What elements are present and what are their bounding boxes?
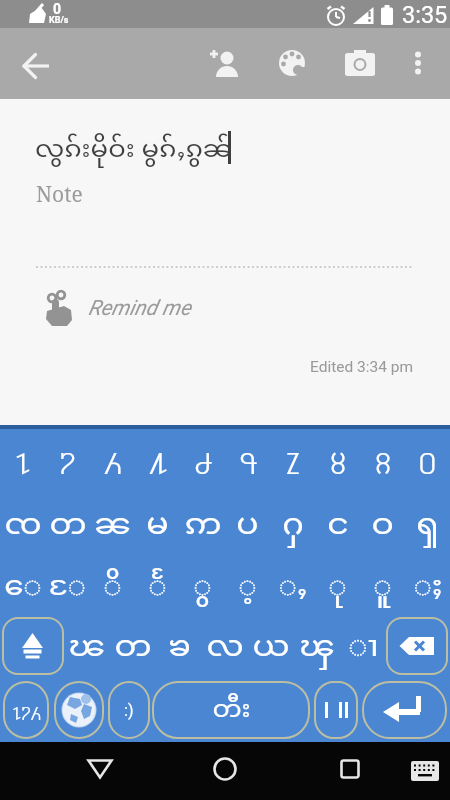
button[interactable]: ႄ — [45, 553, 90, 615]
staticText: ၸ — [4, 504, 42, 549]
button[interactable] — [338, 41, 382, 85]
staticText: ိ — [103, 567, 122, 609]
button[interactable]: တ — [45, 491, 90, 553]
button[interactable]: င — [315, 491, 360, 553]
button[interactable] — [398, 41, 438, 85]
staticText: ႐ — [418, 442, 437, 475]
staticText: ွ — [193, 567, 212, 609]
button[interactable] — [78, 745, 122, 793]
staticText: ့ — [238, 567, 257, 609]
button[interactable]: ႐ — [405, 429, 450, 491]
button[interactable]: ႑႒႓ — [3, 681, 49, 739]
button[interactable]: လ — [202, 615, 248, 677]
button[interactable]: ၶ — [156, 615, 202, 677]
button[interactable]: ၾ — [294, 615, 340, 677]
staticText: တီး — [212, 693, 251, 728]
staticText: ႒ — [59, 442, 76, 475]
staticText: ႁ — [282, 504, 304, 549]
staticText: ၢ — [348, 626, 379, 671]
button[interactable]: ႇ — [270, 553, 315, 615]
button[interactable]: ူ — [360, 553, 405, 615]
staticText: KB/s — [49, 15, 69, 26]
button[interactable]: ႙ — [360, 429, 405, 491]
staticText: ႄ — [49, 567, 86, 609]
button[interactable]: ယ — [248, 615, 294, 677]
button[interactable]: ွ — [180, 553, 225, 615]
button[interactable]: ႅ — [135, 553, 180, 615]
staticText: ၽ — [68, 626, 106, 671]
staticText: ႘ — [330, 442, 346, 475]
staticText: ႑႒႓ — [12, 701, 41, 720]
staticText: 0 — [53, 1, 62, 17]
button[interactable]: ဝ — [360, 491, 405, 553]
button[interactable]: တ — [110, 615, 156, 677]
button[interactable]: ဢ — [180, 491, 225, 553]
button[interactable] — [386, 617, 448, 675]
button[interactable]: တီး — [152, 681, 310, 739]
staticText: 3:35 — [402, 1, 448, 29]
button[interactable] — [314, 681, 358, 739]
button[interactable] — [406, 752, 444, 790]
button[interactable]: ု — [315, 553, 360, 615]
button[interactable]: ပ — [225, 491, 270, 553]
staticText: ူ — [373, 567, 392, 609]
staticText: ဝ — [371, 504, 394, 549]
staticText: လ — [206, 626, 244, 671]
button[interactable]: ႓ — [90, 429, 135, 491]
button[interactable] — [203, 41, 247, 85]
staticText: ၾ — [299, 626, 336, 671]
button[interactable]: ႕ — [180, 429, 225, 491]
staticText: ု — [328, 567, 347, 609]
staticText: ေ — [4, 567, 42, 609]
staticText: ၼ — [94, 504, 132, 549]
button[interactable]: မ — [135, 491, 180, 553]
staticText: ႗ — [286, 442, 300, 475]
staticText: မ — [146, 504, 169, 549]
staticText: ႅ — [148, 567, 167, 609]
staticText: တ — [114, 626, 152, 671]
button[interactable]: ၸ — [0, 491, 45, 553]
button[interactable] — [362, 681, 447, 739]
button[interactable]: ၼ — [90, 491, 135, 553]
button[interactable]: ႑ — [0, 429, 45, 491]
button[interactable]: ႈ — [405, 553, 450, 615]
staticText: Remind me — [88, 296, 191, 321]
staticText: Edited 3:34 pm — [310, 358, 414, 376]
staticText: လွၵ်းမိုဝ်း မွၵ်ႇၵွၼ် — [35, 133, 233, 168]
button[interactable]: ိ — [90, 553, 135, 615]
staticText: ပ — [236, 504, 259, 549]
staticText: ႕ — [194, 442, 212, 475]
staticText: :) — [124, 701, 134, 720]
staticText: ႔ — [149, 442, 167, 475]
button[interactable]: ႒ — [45, 429, 90, 491]
button[interactable]: Remind me — [36, 285, 296, 331]
staticText: ယ — [252, 626, 290, 671]
staticText: Note — [36, 180, 83, 209]
button[interactable] — [14, 41, 58, 85]
button[interactable]: ေ — [0, 553, 45, 615]
staticText: ႈ — [413, 567, 443, 609]
staticText: ဢ — [184, 504, 222, 549]
button[interactable]: ႖ — [225, 429, 270, 491]
button[interactable]: ႁ — [270, 491, 315, 553]
staticText: င — [327, 504, 349, 549]
button[interactable] — [54, 681, 104, 739]
button[interactable] — [328, 745, 372, 793]
staticText: ၶ — [168, 626, 191, 671]
staticText: ႖ — [239, 442, 257, 475]
button[interactable]: ႔ — [135, 429, 180, 491]
button[interactable] — [270, 41, 314, 85]
staticText: ႇ — [278, 567, 308, 609]
button[interactable]: ၢ — [340, 615, 386, 677]
button[interactable]: ့ — [225, 553, 270, 615]
button[interactable]: ၡ — [405, 491, 450, 553]
staticText: ၡ — [416, 504, 439, 549]
button[interactable] — [203, 745, 247, 793]
button[interactable]: ႘ — [315, 429, 360, 491]
button[interactable] — [2, 617, 64, 675]
staticText: ႑ — [15, 442, 31, 475]
staticText: တ — [49, 504, 87, 549]
button[interactable]: ၽ — [64, 615, 110, 677]
button[interactable]: ႗ — [270, 429, 315, 491]
button[interactable]: :) — [108, 681, 150, 739]
